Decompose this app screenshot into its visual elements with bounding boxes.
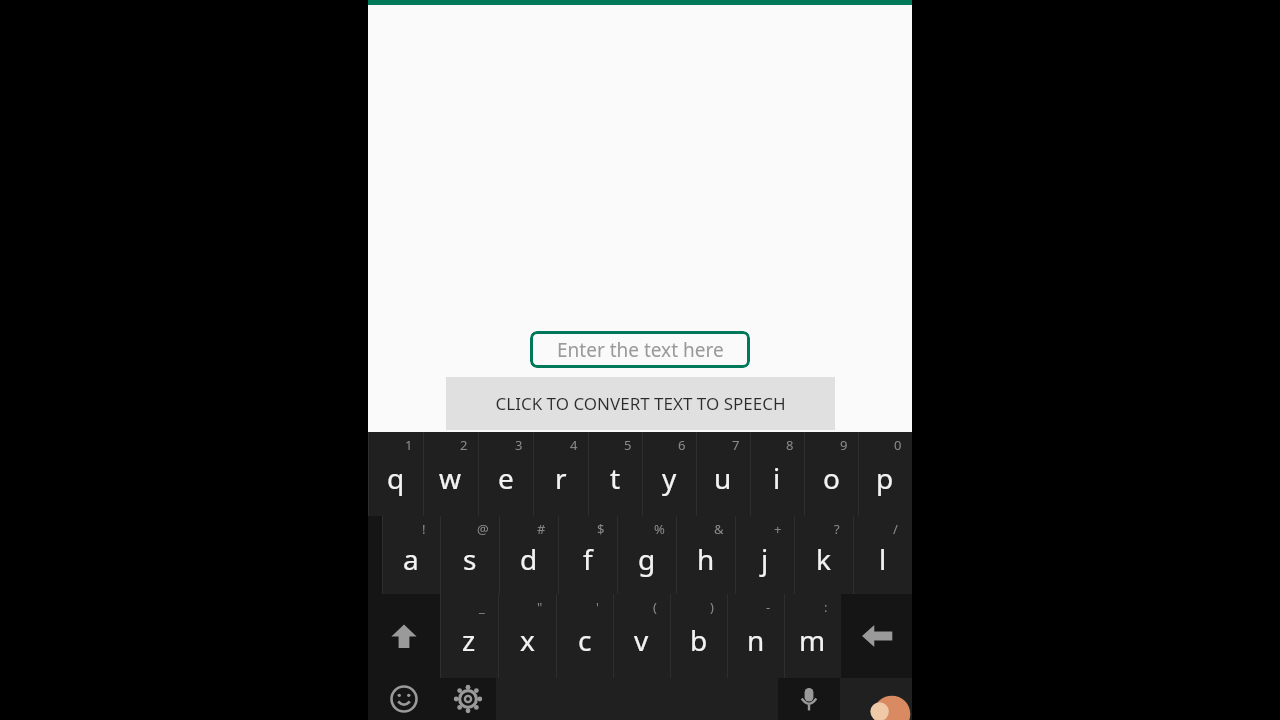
button[interactable]: @ — [440, 516, 499, 594]
staticText: j — [761, 540, 769, 578]
button[interactable]: 2 — [423, 432, 478, 516]
staticText: y — [662, 459, 677, 497]
staticText: g — [638, 540, 656, 578]
staticText: z — [462, 621, 476, 659]
button[interactable]: / — [853, 516, 912, 594]
staticText: o — [823, 459, 840, 497]
staticText: ! — [422, 520, 426, 538]
button[interactable]: Voice input — [778, 678, 840, 720]
button[interactable]: 3 — [478, 432, 533, 516]
staticText: ' — [596, 598, 599, 616]
staticText: f — [583, 540, 593, 578]
staticText: + — [774, 520, 782, 538]
button[interactable]: Enter the text here — [530, 331, 750, 368]
staticText: # — [537, 520, 546, 538]
staticText: p — [876, 459, 894, 497]
staticText: s — [463, 540, 477, 578]
button[interactable]: ! — [382, 516, 440, 594]
staticText: w — [439, 459, 462, 497]
button[interactable]: 1 — [368, 432, 423, 516]
staticText: 7 — [732, 436, 740, 454]
staticText: v — [634, 621, 649, 659]
staticText: 6 — [678, 436, 686, 454]
button[interactable]: # — [499, 516, 558, 594]
button[interactable]: Enter — [840, 678, 912, 720]
staticText: ) — [710, 598, 714, 616]
staticText: c — [578, 621, 592, 659]
button[interactable]: - — [727, 594, 784, 678]
staticText: @ — [477, 520, 489, 538]
button[interactable]: 7 — [696, 432, 750, 516]
button[interactable]: 5 — [588, 432, 642, 516]
staticText: q — [387, 459, 405, 497]
button[interactable]: Shift — [368, 594, 440, 678]
button[interactable]: & — [676, 516, 735, 594]
staticText: a — [403, 540, 419, 578]
button[interactable]: " — [498, 594, 556, 678]
staticText: b — [690, 621, 708, 659]
button[interactable]: Settings — [439, 678, 496, 720]
staticText: ? — [834, 520, 840, 538]
staticText: u — [714, 459, 732, 497]
button[interactable]: ) — [670, 594, 727, 678]
staticText: 5 — [624, 436, 632, 454]
staticText: 3 — [515, 436, 523, 454]
staticText: n — [747, 621, 765, 659]
button[interactable]: _ — [440, 594, 498, 678]
button[interactable]: 6 — [642, 432, 696, 516]
button[interactable]: 4 — [533, 432, 588, 516]
button[interactable]: ' — [556, 594, 613, 678]
staticText: $ — [597, 520, 605, 538]
staticText: ( — [653, 598, 657, 616]
button[interactable]: : — [784, 594, 841, 678]
staticText: : — [824, 598, 828, 616]
staticText: - — [766, 598, 771, 616]
button[interactable]: $ — [558, 516, 617, 594]
button[interactable]: % — [617, 516, 676, 594]
button[interactable]: ( — [613, 594, 670, 678]
button[interactable]: 0 — [858, 432, 912, 516]
staticText: d — [520, 540, 538, 578]
staticText: 1 — [405, 436, 413, 454]
staticText: 2 — [460, 436, 468, 454]
staticText: / — [893, 520, 898, 538]
staticText: & — [714, 520, 724, 538]
staticText: 0 — [894, 436, 902, 454]
staticText: r — [555, 459, 567, 497]
staticText: CLICK TO CONVERT TEXT TO SPEECH — [495, 392, 786, 415]
staticText: 4 — [570, 436, 578, 454]
button[interactable]: + — [735, 516, 794, 594]
staticText: k — [816, 540, 831, 578]
staticText: m — [799, 621, 826, 659]
button[interactable]: Backspace — [841, 594, 912, 678]
staticText: " — [537, 598, 543, 616]
button[interactable]: Emoji — [368, 678, 439, 720]
button[interactable]: ? — [794, 516, 853, 594]
staticText: 8 — [786, 436, 794, 454]
staticText: t — [610, 459, 621, 497]
button[interactable]: 8 — [750, 432, 804, 516]
button[interactable]: CLICK TO CONVERT TEXT TO SPEECH — [446, 377, 835, 430]
button[interactable]: 9 — [804, 432, 858, 516]
staticText: Enter the text here — [557, 337, 724, 363]
staticText: x — [520, 621, 535, 659]
staticText: l — [879, 540, 887, 578]
staticText: i — [773, 459, 781, 497]
staticText: _ — [479, 598, 485, 616]
staticText: e — [498, 459, 514, 497]
staticText: % — [654, 520, 665, 538]
staticText: 9 — [840, 436, 848, 454]
staticText: h — [697, 540, 715, 578]
